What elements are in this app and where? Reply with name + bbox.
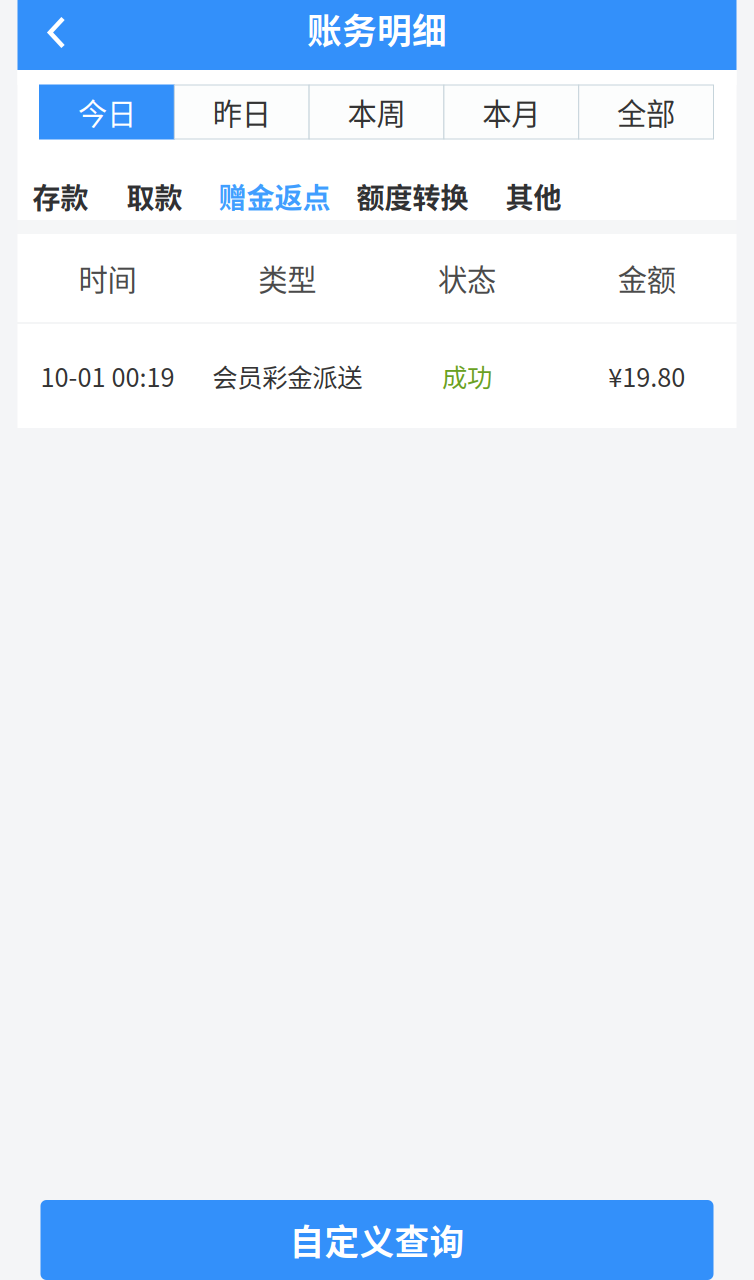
button[interactable]: 本月 [444, 85, 579, 139]
staticText: 金额 [618, 257, 676, 299]
staticText: 类型 [258, 257, 316, 299]
button[interactable]: 10-01 00:19 [17, 324, 736, 428]
staticText: 本月 [482, 91, 540, 133]
button[interactable]: 本周 [309, 85, 444, 139]
button[interactable]: 额度转换 [356, 176, 468, 216]
staticText: 全部 [617, 91, 675, 133]
button[interactable]: 昨日 [174, 85, 309, 139]
staticText: 状态 [438, 257, 496, 299]
staticText: 账务明细 [307, 4, 447, 54]
staticText: 今日 [78, 91, 136, 133]
staticText: 其他 [505, 176, 561, 216]
staticText: 存款 [32, 176, 88, 216]
button[interactable]: 赠金返点 [218, 176, 330, 216]
staticText: 昨日 [213, 91, 271, 133]
staticText: ¥19.80 [608, 358, 685, 394]
staticText: 自定义查询 [289, 1215, 464, 1265]
staticText: 本周 [347, 91, 405, 133]
staticText: 10-01 00:19 [40, 358, 174, 394]
staticText: 时间 [78, 257, 136, 299]
button[interactable]: 存款 [32, 176, 88, 216]
staticText: 赠金返点 [218, 176, 330, 216]
button[interactable]: 取款 [126, 176, 182, 216]
button[interactable]: 全部 [579, 85, 713, 139]
staticText: 会员彩金派送 [212, 358, 362, 394]
button[interactable]: 今日 [39, 85, 174, 139]
staticText: 额度转换 [356, 176, 468, 216]
button[interactable]: 自定义查询 [40, 1200, 713, 1280]
button[interactable]: 其他 [505, 176, 561, 216]
staticText: 成功 [442, 358, 492, 394]
button[interactable]: Back [26, 0, 86, 65]
staticText: 取款 [126, 176, 182, 216]
